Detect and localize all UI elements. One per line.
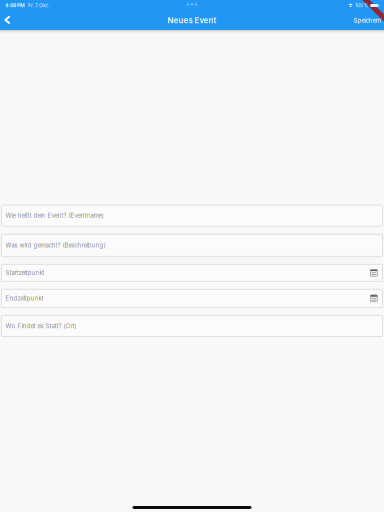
staticText: Endzeitpunkt [5,295,43,302]
staticText: 100 % [355,3,368,8]
staticText: Fr. 7. Okt. [25,2,49,8]
staticText: Wie heißt dein Event? (Eventname) [5,212,103,219]
staticText: Wo Findet es Statt? (Ort) [5,322,76,330]
staticText: Speichern [353,17,381,24]
button[interactable]: Startzeitpunkt [1,264,382,281]
button[interactable]: Speichern [347,14,384,27]
staticText: Was wird gemacht? (Beschreibung) [5,242,105,249]
staticText: Startzeitpunkt [5,269,44,276]
button[interactable]: Back [0,15,17,26]
button[interactable]: Wie heißt dein Event? (Eventname) [1,205,382,226]
staticText: Neues Event [167,16,216,25]
button[interactable]: Wo Findet es Statt? (Ort) [1,315,382,336]
button[interactable]: Endzeitpunkt [1,289,382,307]
button[interactable]: Was wird gemacht? (Beschreibung) [1,234,382,256]
staticText: 4:09 PM [5,2,25,8]
